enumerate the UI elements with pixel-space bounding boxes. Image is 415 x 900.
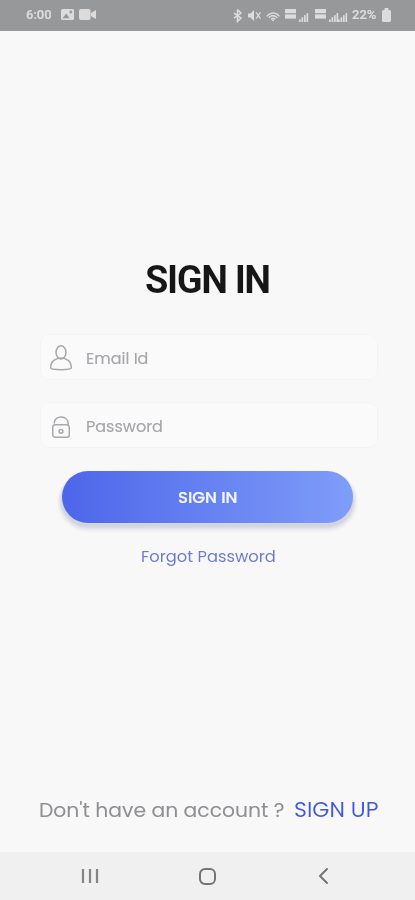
staticText: 22% (352, 7, 377, 22)
staticText: SIGN IN (145, 258, 270, 303)
staticText: SIGN IN (178, 486, 238, 509)
button[interactable]: SIGN UP (294, 794, 379, 825)
button[interactable]: Email Id (40, 334, 378, 380)
staticText: Email Id (86, 347, 149, 369)
button[interactable]: Recents (66, 852, 114, 900)
staticText: SIGN UP (294, 794, 379, 825)
button[interactable]: Password (40, 402, 378, 448)
button[interactable]: Forgot Password (139, 543, 278, 570)
staticText: Don't have an account ? (39, 796, 285, 824)
button[interactable]: SIGN IN (62, 471, 353, 523)
staticText: Forgot Password (141, 545, 276, 568)
button[interactable]: Home (183, 852, 231, 900)
staticText: 6:00 (26, 7, 52, 22)
button[interactable]: Back (299, 852, 347, 900)
staticText: Password (86, 415, 163, 437)
